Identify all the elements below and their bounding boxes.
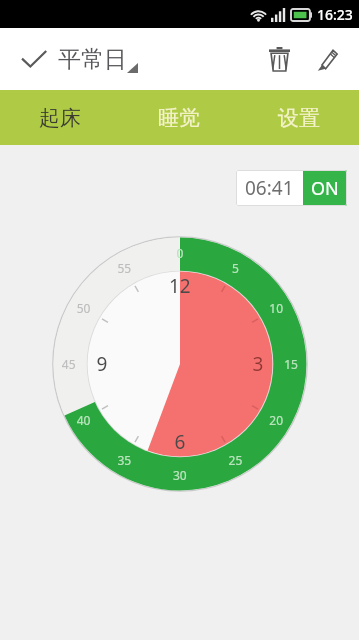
staticText: ON	[311, 176, 339, 201]
button[interactable]: Delete	[255, 35, 303, 83]
button[interactable]	[52, 236, 308, 492]
staticText: 06:41	[245, 175, 294, 201]
button[interactable]: Edit	[303, 35, 351, 83]
button[interactable]: 起床	[0, 90, 119, 145]
button[interactable]: 平常日	[58, 45, 138, 74]
staticText: 平常日	[58, 45, 127, 74]
button[interactable]: 睡觉	[119, 90, 239, 145]
button[interactable]: Confirm	[12, 37, 56, 81]
button[interactable]: 设置	[239, 90, 359, 145]
staticText: 起床	[39, 105, 81, 131]
staticText: 睡觉	[158, 105, 200, 131]
staticText: 设置	[278, 105, 320, 131]
button[interactable]: 06:41	[236, 170, 347, 206]
staticText: 16:23	[317, 5, 353, 24]
